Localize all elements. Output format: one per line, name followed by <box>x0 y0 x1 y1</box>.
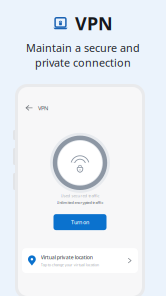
button[interactable]: Turn on <box>53 214 106 230</box>
staticText: Virtual private location <box>41 254 93 261</box>
staticText: Turn on <box>71 218 89 226</box>
staticText: VPN <box>75 11 113 35</box>
staticText: Unlimited encrypted traffic <box>56 200 103 205</box>
button[interactable]: VPN <box>18 101 54 115</box>
button[interactable]: Virtual private location <box>22 248 138 273</box>
staticText: Tap to change your virtual location <box>41 262 99 267</box>
staticText: Used secured traffic <box>60 193 99 198</box>
staticText: private connection <box>35 55 131 70</box>
staticText: Maintain a secure and <box>26 40 140 55</box>
staticText: VPN <box>38 104 48 112</box>
